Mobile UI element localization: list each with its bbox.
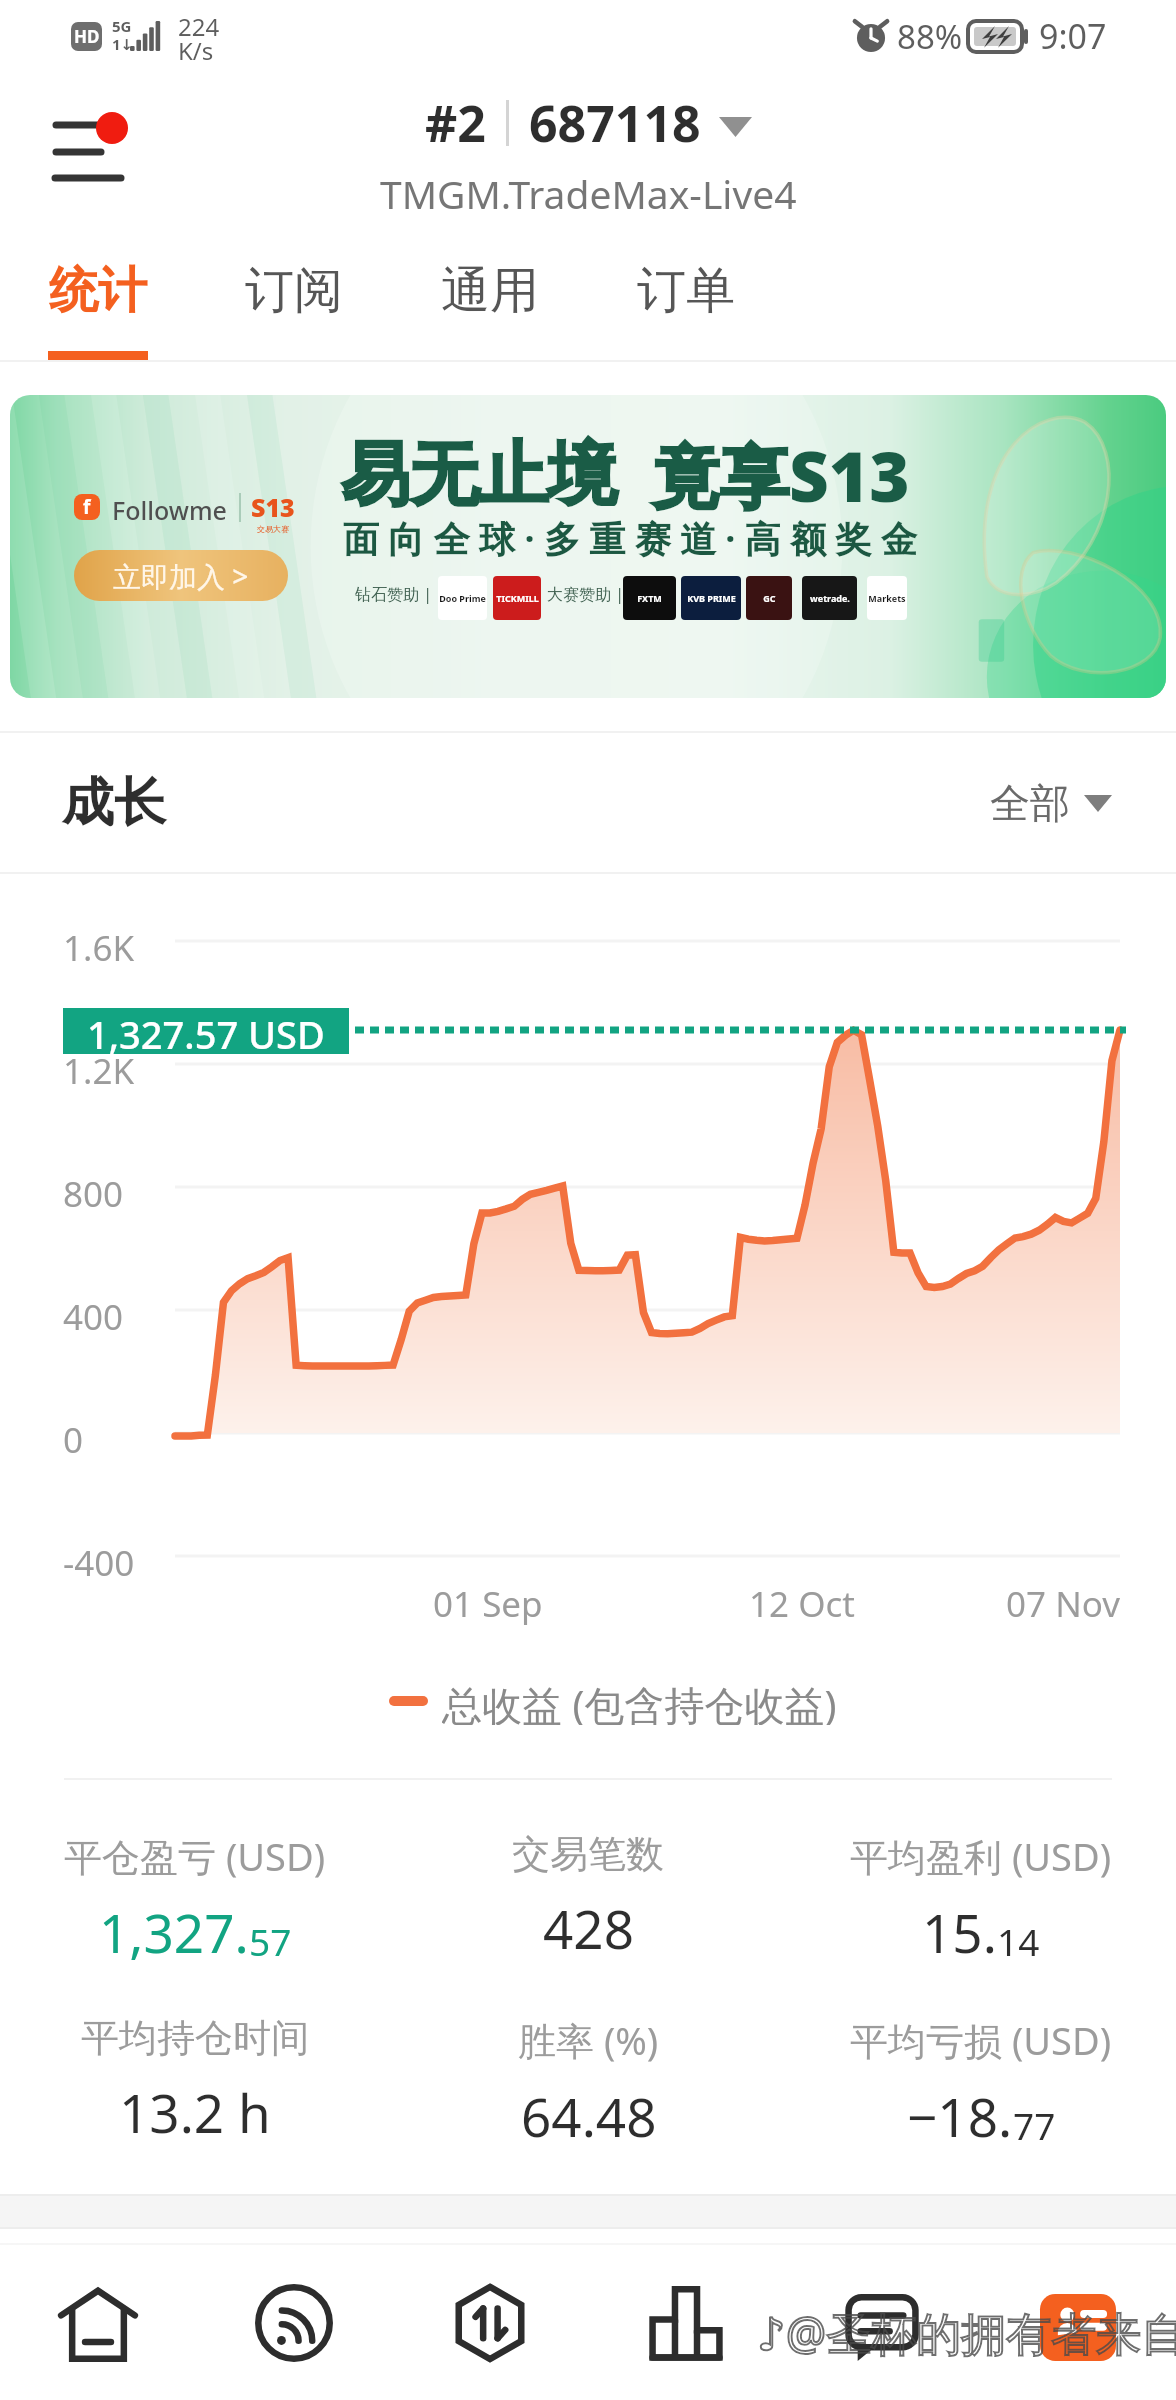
button[interactable]: 立即加入 > [74,550,288,601]
staticText: 全部 [990,778,1070,828]
button[interactable]: Messages [784,2245,980,2400]
staticText: 统计 [49,260,147,322]
button[interactable]: Statistics [588,2245,784,2400]
staticText: 1,327.57 USD [87,1008,325,1054]
staticText: 12 Oct [749,1580,855,1628]
staticText: 01 Sep [433,1580,543,1628]
staticText: #2 [425,89,486,157]
staticText: 1↓ [112,34,134,54]
button[interactable]: Menu [40,100,150,210]
staticText: FXTM [637,592,662,604]
staticText: 88% [897,14,963,59]
staticText: KVB PRIME [687,592,736,604]
staticText: 交易大赛 [257,524,289,534]
staticText: 1.2K [63,1047,135,1095]
staticText: 面 向 全 球 · 多 重 赛 道 · 高 额 奖 金 [343,514,917,563]
button[interactable]: Trade [392,2245,588,2400]
staticText: 订单 [637,260,735,322]
staticText: f [83,494,91,520]
staticText: ♪@圣杯的拥有者来自 [757,2302,1176,2363]
staticText: 9:07 [1039,13,1107,59]
staticText: TMGM.TradeMax-Live4 [380,167,797,220]
button[interactable]: Profile [980,2245,1176,2400]
staticText: 224 [178,10,220,43]
staticText: -400 [63,1539,135,1587]
staticText: 平均亏损 (USD) [850,2014,1112,2066]
staticText: wetrade. [810,592,850,604]
staticText: 大赛赞助 | [547,583,624,605]
button[interactable]: Home [0,2245,196,2400]
button[interactable]: f [10,395,1166,698]
button[interactable]: 通用 [440,260,540,360]
staticText: 5G [112,16,132,36]
button[interactable]: 统计 [48,260,148,360]
staticText: 成长 [62,770,166,836]
staticText: 07 Nov [1006,1580,1120,1628]
staticText: 77 [1013,2100,1056,2150]
staticText: 胜率 (%) [518,2014,659,2066]
staticText: 15. [922,1896,997,1968]
staticText: Markets [868,592,906,604]
staticText: −18. [907,2080,1013,2152]
staticText: 57 [249,1916,292,1966]
button[interactable]: #2 [411,85,766,161]
staticText: 428 [543,1892,634,1964]
staticText: 平仓盈亏 (USD) [64,1830,326,1882]
staticText: GC [763,592,776,604]
staticText: 通用 [441,260,539,322]
staticText: 钻石赞助 | [355,583,432,605]
staticText: 1,327. [99,1896,249,1968]
staticText: 交易笔数 [512,1830,664,1878]
staticText: 平均持仓时间 [81,2014,309,2062]
button[interactable]: Signals [196,2245,392,2400]
staticText: 平均盈利 (USD) [850,1830,1112,1882]
staticText: Followme [112,493,227,527]
staticText: 0 [63,1416,84,1464]
staticText: 800 [63,1170,124,1218]
staticText: 订阅 [245,260,343,322]
staticText: S13 [251,490,295,524]
staticText: 立即加入 > [113,557,249,595]
staticText: 总收益 (包含持仓收益) [442,1677,837,1725]
staticText: 易无止境 [341,432,617,519]
staticText: 13.2 h [119,2076,271,2148]
staticText: 400 [63,1293,124,1341]
staticText: TICKMILL [496,592,539,604]
staticText: K/s [178,34,214,67]
button[interactable]: 订阅 [244,260,344,360]
button[interactable]: 订单 [636,260,736,360]
staticText: 1.6K [63,924,135,972]
staticText: 687118 [529,89,701,157]
button[interactable]: 全部 [976,764,1126,842]
staticText: 64.48 [521,2080,657,2152]
staticText: Doo Prime [439,592,486,604]
staticText: 竟享S13 [651,428,910,522]
staticText: HD [74,25,100,48]
staticText: 14 [997,1916,1040,1966]
